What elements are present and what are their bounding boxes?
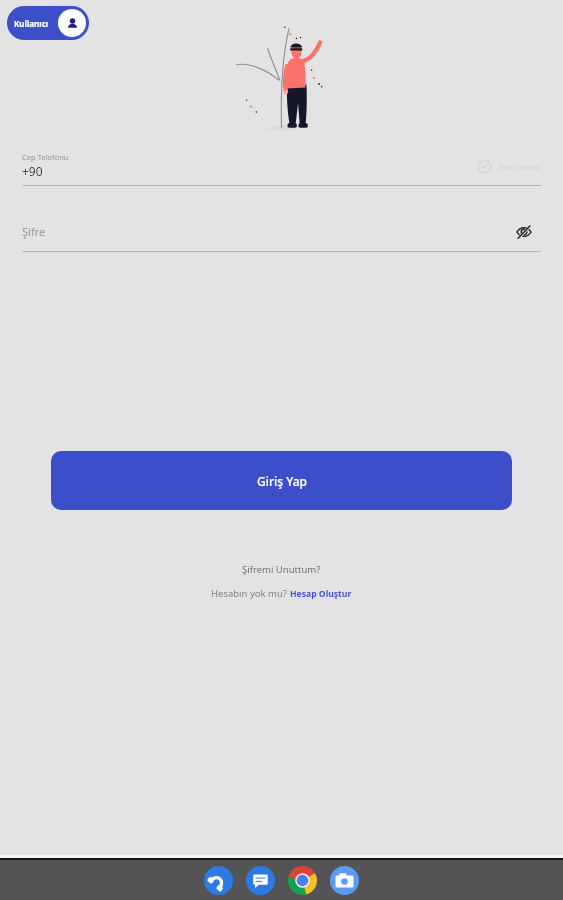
button[interactable]: Beni Hatırla: [475, 157, 543, 176]
button[interactable]: Camera: [330, 866, 359, 895]
button[interactable]: Show password: [512, 220, 536, 244]
staticText: Şifre: [22, 224, 46, 239]
button[interactable]: Chrome: [288, 866, 317, 895]
staticText: Şifremi Unuttum?: [242, 563, 321, 576]
staticText: Hesap Oluştur: [290, 588, 352, 600]
button[interactable]: Messages: [246, 866, 275, 895]
staticText: Kullanıcı: [14, 18, 49, 29]
button[interactable]: Phone: [204, 866, 233, 895]
staticText: Beni Hatırla: [499, 162, 541, 172]
staticText: Cep Telefonu: [22, 152, 69, 162]
staticText: +90: [22, 163, 43, 179]
button[interactable]: Şifremi Unuttum?: [236, 560, 327, 579]
staticText: Giriş Yap: [257, 473, 307, 489]
button[interactable]: Şifre: [22, 218, 502, 251]
staticText: Hesabın yok mu?: [211, 587, 290, 600]
button[interactable]: Giriş Yap: [51, 451, 512, 510]
button[interactable]: Hesap Oluştur: [290, 588, 352, 600]
button[interactable]: Kullanıcı: [7, 6, 89, 40]
button[interactable]: Cep Telefonu: [22, 150, 462, 186]
